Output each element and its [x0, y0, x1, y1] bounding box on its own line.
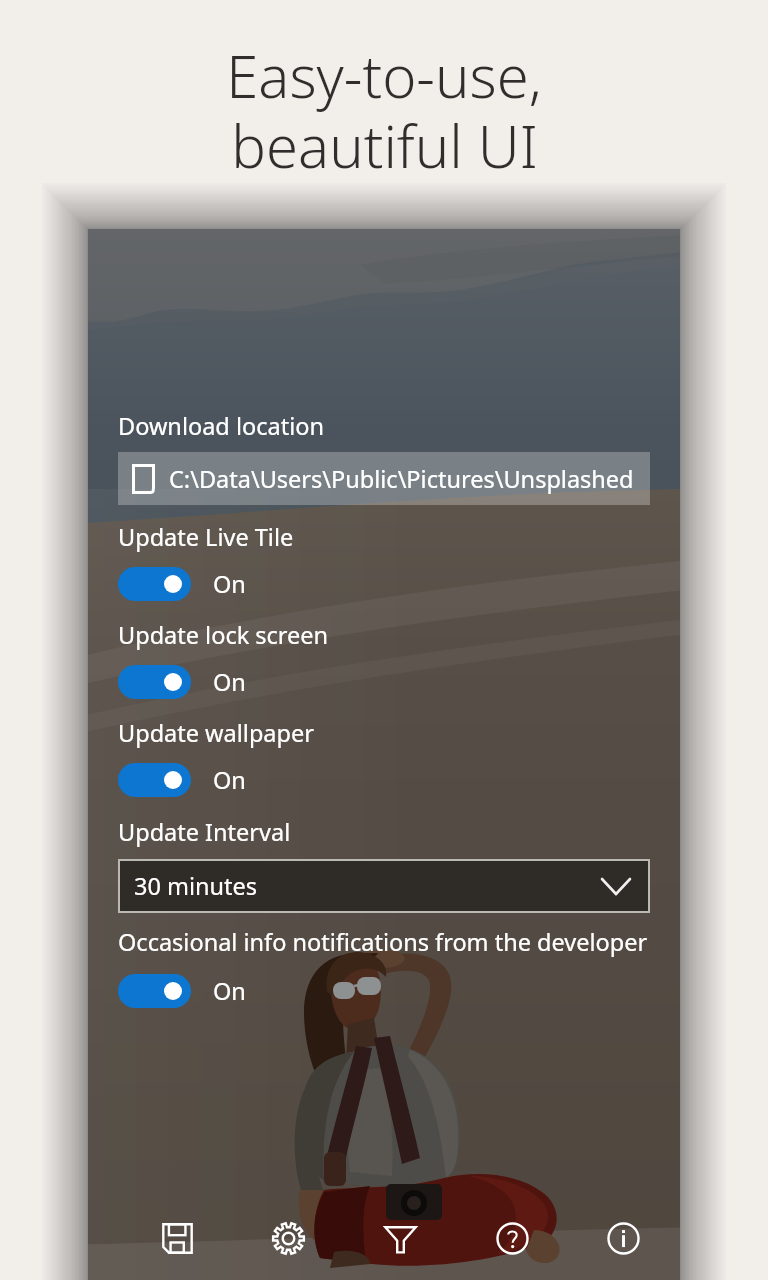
staticText: Update Interval [118, 816, 291, 848]
button[interactable]: Filter [362, 1212, 438, 1264]
staticText: Easy-to-use, [226, 36, 542, 115]
button[interactable]: Save [139, 1212, 215, 1264]
button[interactable]: Settings [250, 1212, 326, 1264]
button[interactable]: On [118, 567, 246, 601]
staticText: Download location [118, 410, 324, 442]
button[interactable]: On [118, 763, 246, 797]
button[interactable]: On [118, 665, 246, 699]
staticText: beautiful UI [231, 106, 538, 185]
staticText: 30 minutes [134, 870, 258, 902]
staticText: C:\Data\Users\Public\Pictures\Unsplashed [169, 463, 634, 495]
staticText: Update wallpaper [118, 717, 314, 749]
staticText: On [213, 764, 246, 796]
staticText: On [213, 568, 246, 600]
button[interactable]: On [118, 974, 246, 1008]
staticText: On [213, 975, 246, 1007]
staticText: Update lock screen [118, 619, 329, 651]
staticText: Occasional info notifications from the d… [118, 926, 648, 958]
button[interactable]: 30 minutes [120, 861, 648, 911]
button[interactable]: C:\Data\Users\Public\Pictures\Unsplashed [118, 452, 650, 505]
button[interactable]: Help [474, 1212, 550, 1264]
staticText: On [213, 666, 246, 698]
staticText: Update Live Tile [118, 521, 294, 553]
button[interactable]: Info [585, 1212, 661, 1264]
